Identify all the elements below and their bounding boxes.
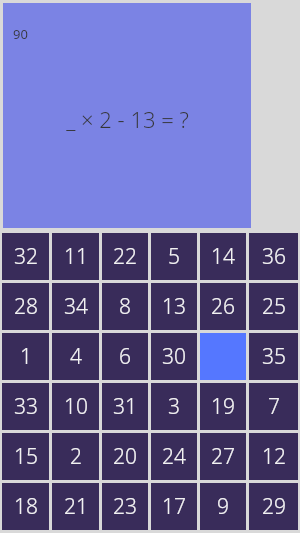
staticText: 6 (119, 342, 131, 371)
staticText: 21 (64, 492, 88, 521)
button[interactable]: 21 (52, 483, 99, 530)
staticText: 15 (14, 442, 38, 471)
button[interactable]: 32 (2, 233, 49, 280)
button[interactable]: 30 (151, 333, 197, 380)
button[interactable]: 17 (151, 483, 197, 530)
staticText: 24 (162, 442, 186, 471)
staticText: 20 (113, 442, 137, 471)
staticText: 35 (262, 342, 286, 371)
staticText: 11 (64, 242, 88, 271)
button[interactable]: 1 (2, 333, 49, 380)
button[interactable]: 9 (200, 483, 246, 530)
button[interactable]: 27 (200, 433, 246, 480)
button[interactable]: 23 (102, 483, 148, 530)
button[interactable]: 8 (102, 283, 148, 330)
staticText: 19 (211, 392, 235, 421)
staticText: 1 (20, 342, 32, 371)
staticText: 27 (211, 442, 235, 471)
staticText: 36 (262, 242, 286, 271)
button[interactable]: 7 (249, 383, 298, 430)
staticText: 4 (70, 342, 82, 371)
button[interactable]: 10 (52, 383, 99, 430)
button[interactable]: 6 (102, 333, 148, 380)
button[interactable]: 4 (52, 333, 99, 380)
button[interactable]: 31 (102, 383, 148, 430)
button[interactable]: 20 (102, 433, 148, 480)
staticText: 8 (119, 292, 131, 321)
button[interactable]: 29 (249, 483, 298, 530)
button[interactable]: 36 (249, 233, 298, 280)
staticText: 32 (14, 242, 38, 271)
staticText: 30 (162, 342, 186, 371)
button[interactable]: 2 (52, 433, 99, 480)
button[interactable]: 90 (3, 3, 251, 228)
staticText: 25 (262, 292, 286, 321)
button[interactable]: 28 (2, 283, 49, 330)
button[interactable]: 3 (151, 383, 197, 430)
button[interactable]: 13 (151, 283, 197, 330)
staticText: 90 (13, 25, 28, 43)
button[interactable]: 12 (249, 433, 298, 480)
staticText: 22 (113, 242, 137, 271)
staticText: 12 (262, 442, 286, 471)
button[interactable]: 34 (52, 283, 99, 330)
staticText: 29 (262, 492, 286, 521)
button[interactable]: 22 (102, 233, 148, 280)
staticText: 18 (14, 492, 38, 521)
button[interactable]: 14 (200, 233, 246, 280)
button[interactable]: 5 (151, 233, 197, 280)
staticText: 28 (14, 292, 38, 321)
button[interactable]: 25 (249, 283, 298, 330)
staticText: 31 (113, 392, 137, 421)
staticText: 23 (113, 492, 137, 521)
staticText: 10 (64, 392, 88, 421)
button[interactable]: 24 (151, 433, 197, 480)
staticText: 26 (211, 292, 235, 321)
button[interactable]: 35 (249, 333, 298, 380)
staticText: 13 (162, 292, 186, 321)
button[interactable]: 26 (200, 283, 246, 330)
staticText: 2 (70, 442, 82, 471)
staticText: 5 (168, 242, 180, 271)
button[interactable]: 11 (52, 233, 99, 280)
staticText: 9 (217, 492, 229, 521)
staticText: 33 (14, 392, 38, 421)
button[interactable]: 15 (2, 433, 49, 480)
staticText: _ × 2 - 13 = ? (66, 104, 189, 134)
staticText: 14 (211, 242, 235, 271)
staticText: 17 (162, 492, 186, 521)
button[interactable]: 33 (2, 383, 49, 430)
staticText: 7 (268, 392, 280, 421)
button[interactable]: 19 (200, 383, 246, 430)
staticText: 3 (168, 392, 180, 421)
staticText: 34 (64, 292, 88, 321)
button[interactable]: 18 (2, 483, 49, 530)
